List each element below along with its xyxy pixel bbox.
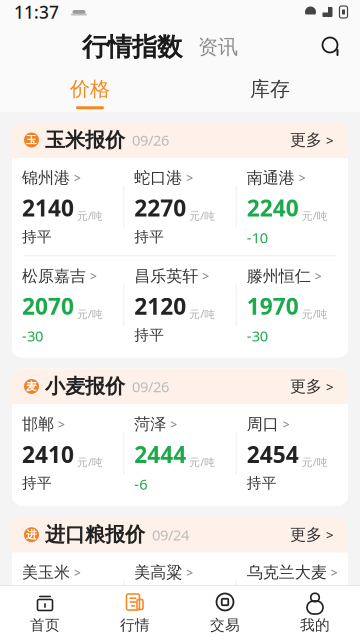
button[interactable]: 交易 (180, 585, 270, 640)
staticText: 库存 (250, 77, 290, 101)
staticText: 锦州港 (22, 168, 70, 188)
staticText: > (186, 170, 193, 186)
staticText: 麦 (26, 380, 37, 393)
staticText: -10 (247, 228, 268, 247)
staticText: 2240 (247, 193, 299, 223)
staticText: 持平 (134, 228, 164, 246)
staticText: 持平 (134, 622, 164, 640)
button[interactable]: 松原嘉吉 (12, 266, 123, 345)
staticText: 元/吨 (189, 209, 215, 223)
staticText: > (331, 565, 338, 580)
button[interactable]: 我的 (270, 585, 360, 640)
staticText: 持平 (22, 228, 52, 246)
staticText: 09/26 (132, 377, 169, 396)
staticText: 小麦报价 (45, 374, 125, 399)
staticText: 更多 (290, 377, 322, 396)
staticText: > (326, 378, 334, 395)
staticText: 资讯 (198, 35, 238, 59)
staticText: 交易 (210, 616, 240, 634)
staticText: 2070 (22, 291, 74, 321)
staticText: > (170, 416, 177, 432)
staticText: 周口 (247, 414, 279, 434)
staticText: 2140 (22, 193, 74, 223)
staticText: 2180 (134, 587, 186, 617)
staticText: > (315, 268, 322, 284)
staticText: -30 (22, 326, 43, 345)
button[interactable]: 锦州港 (12, 168, 123, 246)
button[interactable]: 菏泽 (124, 414, 236, 494)
staticText: 行情 (120, 616, 150, 634)
staticText: 元/吨 (189, 455, 215, 469)
button[interactable]: 更多 (288, 521, 336, 549)
staticText: 我的 (300, 616, 330, 634)
staticText: 元/吨 (77, 455, 103, 469)
staticText: 09/26 (132, 130, 169, 150)
staticText: > (202, 268, 209, 284)
staticText: 美高粱 (134, 563, 182, 582)
staticText: 元/吨 (302, 603, 328, 617)
button[interactable]: 蛇口港 (124, 168, 236, 246)
staticText: 进 (26, 528, 37, 541)
staticText: 更多 (290, 130, 322, 150)
staticText: 09/24 (152, 525, 189, 544)
button[interactable]: 行情 (90, 585, 180, 640)
button[interactable]: 滕州恒仁 (237, 266, 348, 345)
staticText: 蛇口港 (134, 168, 182, 188)
staticText: 2050 (22, 587, 74, 617)
button[interactable]: 昌乐英轩 (124, 266, 236, 344)
staticText: > (74, 170, 81, 186)
button[interactable]: 南通港 (237, 168, 348, 247)
staticText: 持平 (22, 474, 52, 492)
staticText: 2410 (22, 439, 74, 469)
staticText: 首页 (30, 616, 60, 634)
staticText: > (299, 170, 306, 186)
button[interactable]: 首页 (0, 585, 90, 640)
staticText: 松原嘉吉 (22, 266, 86, 286)
staticText: 持平 (134, 326, 164, 344)
staticText: 玉米报价 (45, 128, 125, 152)
button[interactable]: 行情指数 (82, 27, 182, 66)
staticText: > (90, 268, 97, 284)
staticText: 元/吨 (302, 455, 328, 469)
button[interactable]: 美玉米 (12, 563, 123, 640)
staticText: -30 (247, 326, 268, 345)
staticText: 2444 (134, 439, 186, 469)
button[interactable]: 周口 (237, 414, 348, 492)
staticText: 2454 (247, 439, 299, 469)
button[interactable]: 邯郸 (12, 414, 123, 492)
staticText: 邯郸 (22, 414, 54, 434)
staticText: 玉 (26, 133, 37, 146)
staticText: 元/吨 (77, 307, 103, 321)
staticText: 持平 (247, 474, 277, 492)
button[interactable]: 更多 (288, 126, 336, 154)
staticText: 更多 (290, 525, 322, 545)
staticText: 元/吨 (77, 209, 103, 223)
button[interactable]: 乌克兰大麦 (237, 563, 348, 640)
staticText: 价格 (70, 77, 110, 101)
button[interactable]: 搜索 (320, 35, 360, 59)
staticText: 元/吨 (302, 307, 328, 321)
staticText: -6 (134, 474, 147, 494)
staticText: 昌乐英轩 (134, 266, 198, 286)
staticText: > (74, 565, 81, 580)
button[interactable]: 价格 (0, 69, 180, 113)
button[interactable]: 库存 (180, 69, 360, 113)
staticText: 元/吨 (302, 209, 328, 223)
staticText: 行情指数 (82, 31, 182, 62)
staticText: 元/吨 (189, 307, 215, 321)
staticText: 2120 (134, 291, 186, 321)
button[interactable]: 更多 (288, 373, 336, 400)
staticText: 1970 (247, 291, 299, 321)
button[interactable]: 资讯 (182, 31, 238, 63)
staticText: > (283, 416, 290, 432)
button[interactable]: 美高粱 (124, 563, 236, 640)
staticText: 乌克兰大麦 (247, 563, 327, 582)
staticText: 2270 (134, 193, 186, 223)
staticText: > (58, 416, 65, 432)
staticText: 南通港 (247, 168, 295, 188)
staticText: > (326, 131, 334, 149)
